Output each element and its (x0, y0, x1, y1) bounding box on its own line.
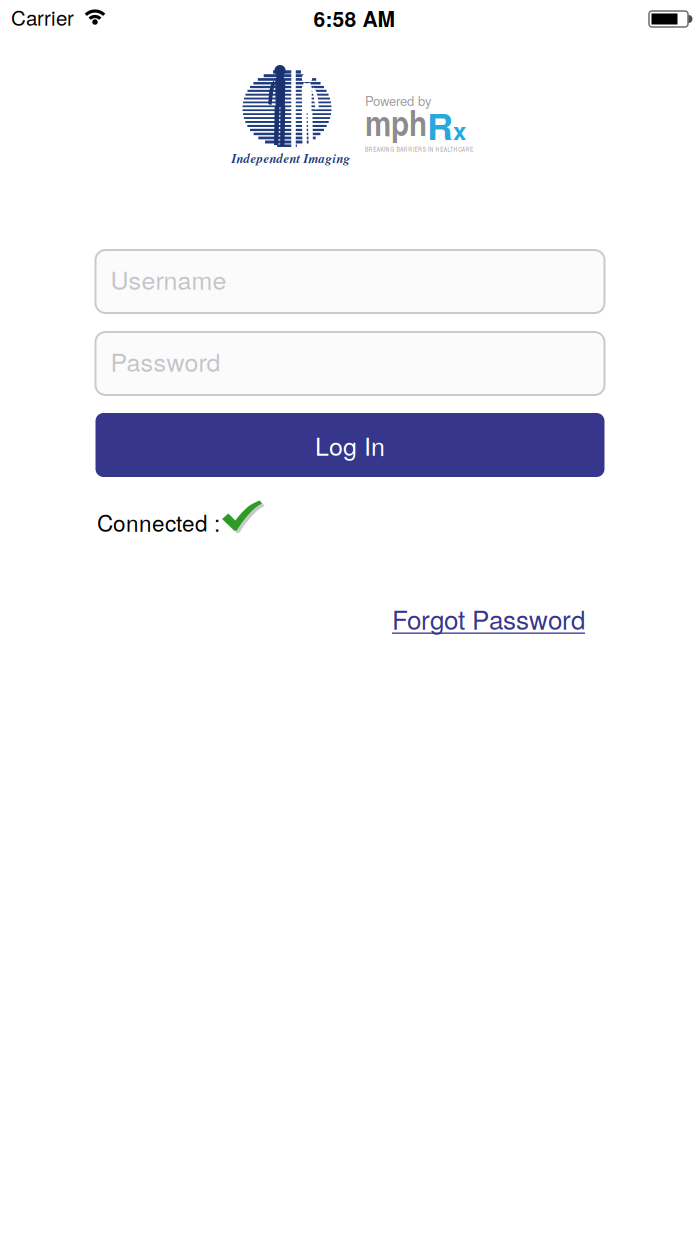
staticText: BREAKING BARRIERS IN HEALTHCARE (365, 145, 473, 154)
staticText: Carrier (11, 2, 74, 32)
textField[interactable]: Username (110, 264, 604, 299)
staticText: Password (110, 343, 220, 379)
staticText: Forgot Password (392, 600, 585, 637)
staticText: R (427, 100, 453, 151)
staticText: 6:58 AM (313, 3, 394, 34)
staticText: Username (110, 264, 226, 299)
staticText: Independent Imaging (231, 149, 350, 167)
staticText: Connected : (97, 506, 226, 538)
staticText: x (453, 113, 466, 147)
staticText: Password (110, 346, 220, 381)
button[interactable]: Forgot Password (392, 600, 585, 637)
staticText: Username (110, 261, 226, 297)
button[interactable]: Log In (95, 413, 604, 477)
staticText: mph (365, 96, 427, 147)
staticText: Powered by (365, 91, 432, 110)
staticText: Log In (315, 427, 385, 463)
textField[interactable]: Password (110, 346, 604, 381)
